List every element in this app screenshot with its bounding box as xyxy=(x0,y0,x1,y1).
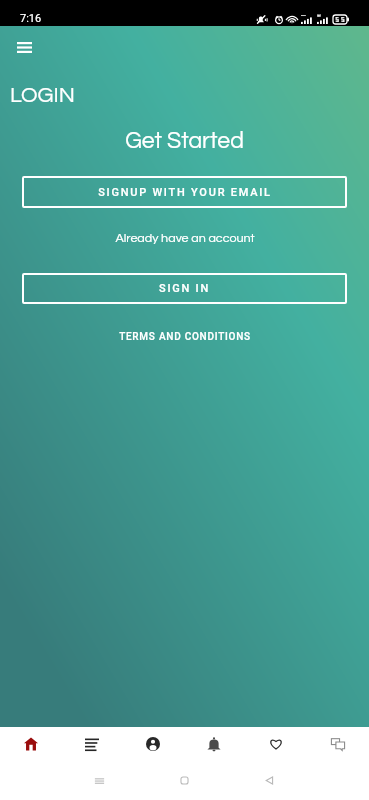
button[interactable]: Back xyxy=(227,760,312,800)
button[interactable]: Feed xyxy=(61,727,122,760)
button[interactable]: Notifications xyxy=(183,727,245,760)
staticText: Already have an account xyxy=(115,232,255,245)
button[interactable]: Messages xyxy=(307,727,369,760)
staticText: SIGNUP WITH YOUR EMAIL xyxy=(98,186,272,199)
staticText: TERMS AND CONDITIONS xyxy=(119,331,251,343)
staticText: Get Started xyxy=(125,129,244,153)
button[interactable]: Open navigation menu xyxy=(10,33,38,61)
staticText: 7:16 xyxy=(20,12,42,25)
button[interactable]: Sign in xyxy=(22,273,347,304)
staticText: SIGN IN xyxy=(159,282,210,295)
button[interactable]: Home xyxy=(0,727,61,760)
button[interactable]: Account xyxy=(122,727,183,760)
button[interactable]: TERMS AND CONDITIONS xyxy=(113,329,257,345)
button[interactable]: Home xyxy=(142,760,227,800)
button[interactable]: Recent apps xyxy=(57,760,142,800)
button[interactable]: Favorites xyxy=(245,727,307,760)
staticText: LOGIN xyxy=(10,84,75,107)
button[interactable]: Signup with your email xyxy=(22,176,347,208)
